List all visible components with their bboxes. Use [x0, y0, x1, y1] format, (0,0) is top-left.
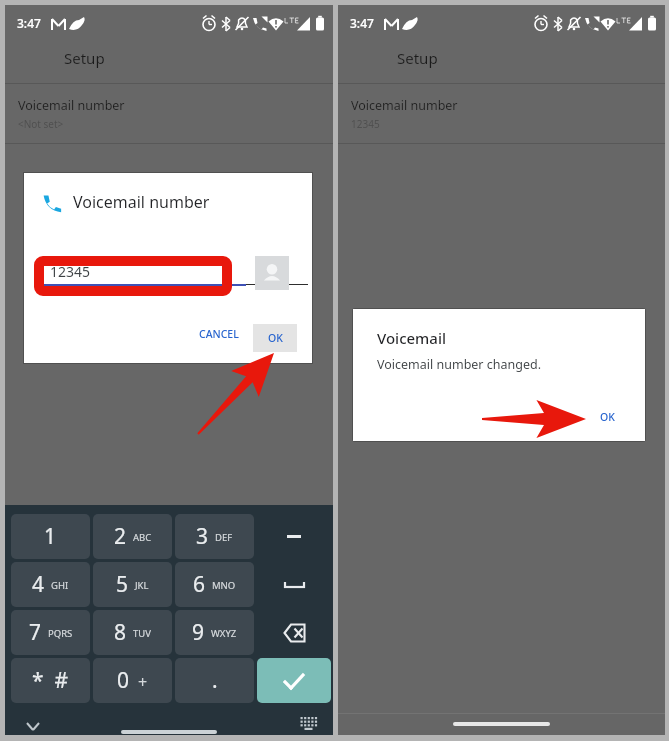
staticText: 0: [117, 666, 130, 695]
staticText: 12345: [50, 262, 91, 281]
staticText: Voicemail number: [73, 191, 210, 213]
staticText: Voicemail number: [351, 97, 458, 114]
staticText: 1: [44, 522, 57, 551]
button[interactable]: 6: [175, 562, 254, 607]
staticText: MNO: [212, 579, 236, 592]
staticText: OK: [268, 331, 283, 345]
staticText: Voicemail number changed.: [377, 356, 542, 373]
staticText: 8: [114, 618, 127, 647]
staticText: 7: [29, 618, 42, 647]
button[interactable]: Space: [257, 562, 331, 607]
staticText: 5: [116, 570, 129, 599]
button[interactable]: OK: [253, 324, 297, 352]
button[interactable]: Voicemail number: [338, 84, 665, 143]
staticText: WXYZ: [211, 627, 237, 640]
button[interactable]: Dash: [257, 514, 331, 559]
button[interactable]: 4: [11, 562, 90, 607]
staticText: TUV: [133, 627, 151, 640]
staticText: Voicemail number: [18, 97, 125, 114]
button[interactable]: 7: [11, 610, 90, 655]
staticText: .: [212, 666, 218, 695]
button[interactable]: Switch keyboard: [299, 714, 317, 732]
button[interactable]: 0: [93, 658, 172, 703]
staticText: * #: [32, 666, 69, 695]
button[interactable]: CANCEL: [187, 319, 251, 349]
button[interactable]: 3: [175, 514, 254, 559]
staticText: OK: [600, 410, 615, 424]
button[interactable]: 8: [93, 610, 172, 655]
staticText: DEF: [215, 531, 233, 544]
button[interactable]: 2: [93, 514, 172, 559]
button[interactable]: 5: [93, 562, 172, 607]
staticText: Setup: [397, 48, 438, 68]
button[interactable]: Hide keyboard: [23, 715, 43, 735]
staticText: 3:47: [17, 15, 41, 31]
staticText: 2: [114, 522, 127, 551]
staticText: GHI: [51, 579, 69, 592]
staticText: 4: [32, 570, 45, 599]
button[interactable]: Enter: [257, 658, 331, 703]
staticText: +: [138, 671, 148, 693]
staticText: PQRS: [48, 627, 73, 640]
button[interactable]: 1: [11, 514, 90, 559]
staticText: 3: [196, 522, 209, 551]
staticText: Voicemail: [377, 328, 447, 348]
staticText: 3:47: [350, 15, 374, 31]
staticText: 12345: [351, 117, 380, 131]
staticText: CANCEL: [199, 327, 239, 341]
button[interactable]: Voicemail number: [5, 84, 333, 143]
button[interactable]: * #: [11, 658, 90, 703]
button[interactable]: OK: [588, 402, 627, 432]
staticText: <Not set>: [18, 117, 64, 131]
staticText: 6: [193, 570, 206, 599]
staticText: JKL: [135, 579, 149, 592]
button[interactable]: Backspace: [257, 610, 331, 655]
button[interactable]: .: [175, 658, 254, 703]
staticText: 9: [192, 618, 205, 647]
staticText: Setup: [64, 48, 105, 68]
staticText: ABC: [133, 531, 152, 544]
button[interactable]: Pick contact: [255, 256, 289, 290]
button[interactable]: 9: [175, 610, 254, 655]
